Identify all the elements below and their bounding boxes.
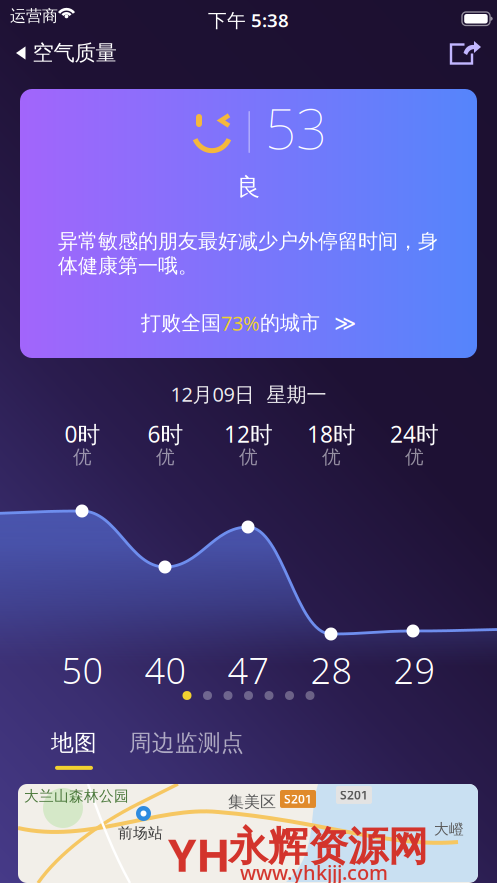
staticText: 0时	[64, 419, 100, 449]
staticText: 异常敏感的朋友最好减少户外停留时间，身体健康第一哦。	[58, 229, 438, 278]
staticText: 前场站	[118, 824, 163, 842]
staticText: 地图	[51, 729, 97, 757]
button[interactable]: 空气质量	[0, 31, 116, 75]
staticText: 优	[322, 445, 341, 468]
staticText: 24时	[390, 419, 439, 449]
staticText: S201	[284, 791, 312, 807]
staticText: 优	[405, 445, 424, 468]
staticText: 50	[61, 646, 103, 694]
staticText: YH	[168, 824, 231, 883]
staticText: 永辉资源网	[228, 822, 428, 871]
staticText: 下午 5:38	[208, 8, 289, 32]
staticText: S201	[340, 787, 368, 803]
button[interactable]: 分享	[445, 31, 497, 75]
staticText: 打败全国	[141, 311, 221, 335]
staticText: 的城市	[260, 311, 320, 335]
button[interactable]: 周边监测点	[97, 729, 244, 770]
staticText: 周边监测点	[129, 729, 244, 757]
staticText: 28	[310, 646, 352, 694]
staticText: 53	[265, 92, 327, 164]
staticText: 优	[239, 445, 258, 468]
staticText: 优	[73, 445, 92, 468]
staticText: 73%	[221, 310, 260, 336]
staticText: 47	[227, 646, 269, 694]
staticText: 29	[393, 646, 435, 694]
staticText: 空气质量	[32, 40, 116, 66]
staticText: 良	[236, 172, 260, 202]
staticText: 12时	[224, 419, 273, 449]
staticText: 6时	[147, 419, 183, 449]
staticText: 运营商	[10, 6, 58, 26]
staticText: ≫	[320, 311, 356, 335]
button[interactable]: 地图	[51, 729, 97, 770]
staticText: 40	[144, 646, 186, 694]
staticText: www.yhkjjj.com	[240, 859, 388, 883]
staticText: 集美区	[228, 792, 276, 812]
staticText: 12月09日 星期一	[170, 381, 326, 407]
staticText: 18时	[307, 419, 356, 449]
staticText: 大嶝	[434, 820, 464, 838]
staticText: 优	[156, 445, 175, 468]
staticText: 大兰山森林公园	[24, 787, 129, 805]
